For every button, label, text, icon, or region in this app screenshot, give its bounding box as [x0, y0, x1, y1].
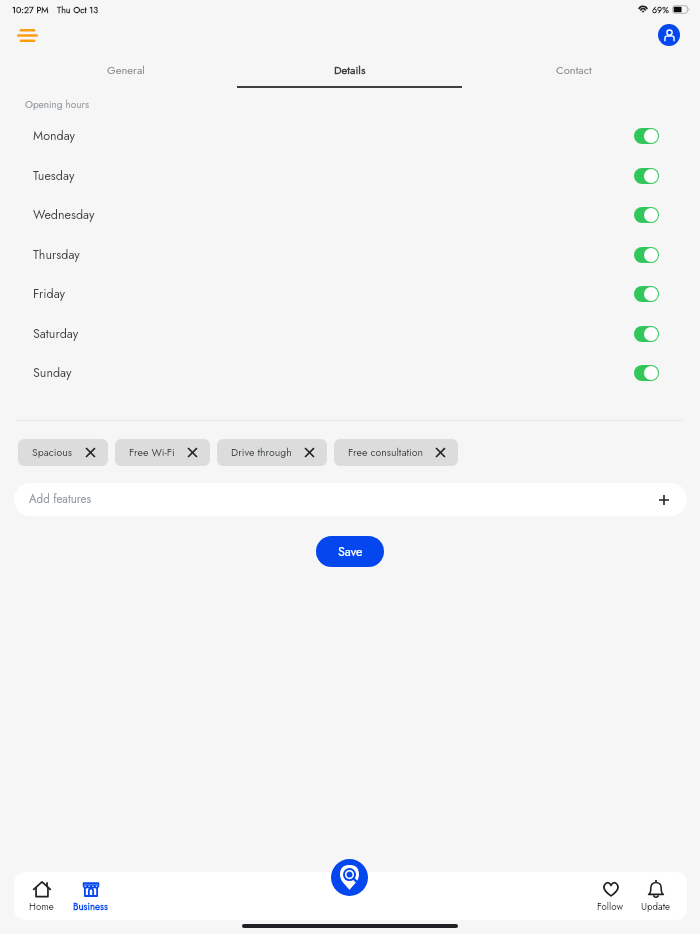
staticText: Add features [29, 491, 92, 508]
staticText: Contact [556, 62, 592, 78]
staticText: Update [641, 900, 671, 914]
staticText: Free consultation [348, 445, 423, 460]
button[interactable]: Monday [0, 116, 700, 156]
staticText: Thursday [33, 246, 80, 264]
button[interactable]: Toggle Wednesday [634, 207, 659, 223]
button[interactable]: Drive through [217, 439, 327, 466]
staticText: Opening hours [25, 97, 89, 111]
button[interactable]: Spacious [18, 439, 108, 466]
staticText: 69% [652, 3, 669, 16]
staticText: Business [73, 900, 108, 914]
staticText: 10:27 PM [12, 3, 49, 16]
button[interactable]: Toggle Tuesday [634, 168, 659, 184]
button[interactable]: Sunday [0, 353, 700, 393]
staticText: Details [334, 62, 366, 78]
button[interactable]: Toggle Monday [634, 128, 659, 144]
button[interactable]: Follow [580, 880, 640, 914]
staticText: Tuesday [33, 167, 75, 185]
button[interactable]: Add features [14, 483, 687, 516]
button[interactable]: Toggle Saturday [634, 326, 659, 342]
staticText: Thu Oct 13 [57, 3, 99, 16]
button[interactable]: General [14, 55, 238, 85]
staticText: Free Wi-Fi [129, 445, 175, 460]
button[interactable]: Contact [462, 55, 686, 85]
staticText: Saturday [33, 325, 79, 343]
button[interactable]: Wednesday [0, 195, 700, 235]
button[interactable]: Tuesday [0, 156, 700, 196]
staticText: Spacious [32, 445, 73, 460]
staticText: Drive through [231, 445, 292, 460]
staticText: Monday [33, 127, 76, 145]
staticText: Friday [33, 285, 66, 303]
button[interactable]: Free Wi-Fi [115, 439, 210, 466]
button[interactable]: Update [626, 880, 686, 914]
button[interactable]: Toggle Thursday [634, 247, 659, 263]
button[interactable]: Business [60, 880, 120, 914]
staticText: Wednesday [33, 206, 95, 224]
button[interactable]: Home [11, 880, 71, 914]
button[interactable]: Saturday [0, 314, 700, 354]
staticText: Follow [597, 900, 624, 914]
staticText: General [107, 62, 145, 78]
button[interactable]: Free consultation [334, 439, 458, 466]
staticText: Save [338, 543, 363, 561]
button[interactable]: Toggle Friday [634, 286, 659, 302]
button[interactable]: Toggle Sunday [634, 365, 659, 381]
staticText: Sunday [33, 364, 72, 382]
button[interactable]: Details [238, 55, 462, 85]
button[interactable]: Account [658, 24, 680, 46]
button[interactable]: Thursday [0, 235, 700, 275]
button[interactable]: Save [316, 536, 384, 567]
button[interactable]: Menu [11, 19, 44, 52]
button[interactable]: Friday [0, 274, 700, 314]
button[interactable]: Search nearby [331, 859, 368, 896]
staticText: Home [29, 900, 54, 914]
